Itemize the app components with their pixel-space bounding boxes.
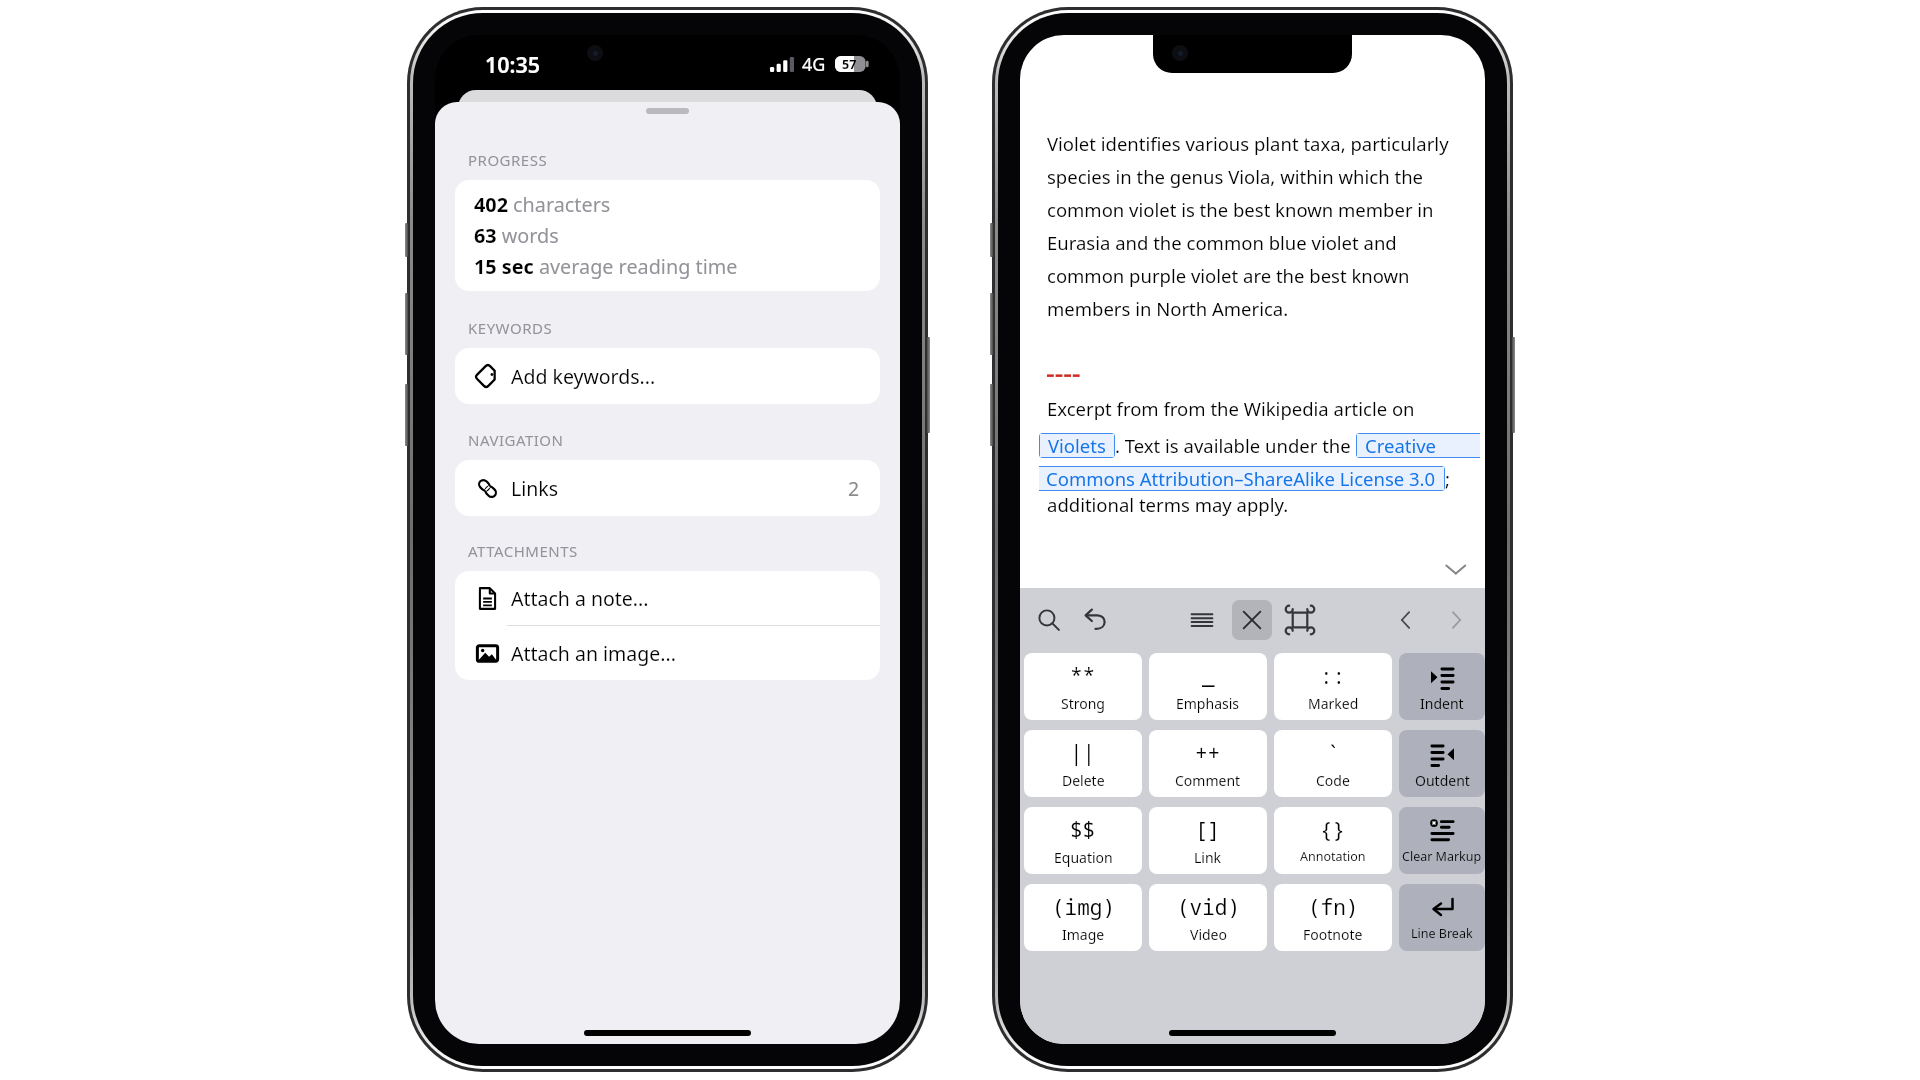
button[interactable]: Menu	[1182, 600, 1222, 640]
staticText: Image	[1062, 925, 1105, 944]
button[interactable]: Attach an image...	[455, 626, 880, 680]
button[interactable]: Links	[455, 460, 880, 516]
staticText: (img)	[1052, 893, 1115, 922]
staticText: Video	[1190, 925, 1227, 944]
button[interactable]: Indent	[1399, 653, 1485, 720]
staticText: Marked	[1308, 694, 1359, 713]
staticText: Equation	[1054, 848, 1113, 867]
staticText: _	[1202, 662, 1215, 691]
staticText: Attach an image...	[511, 640, 676, 667]
button[interactable]: ++	[1149, 730, 1267, 797]
staticText: ::	[1320, 662, 1346, 691]
staticText: $$	[1070, 816, 1096, 845]
button[interactable]: _	[1149, 653, 1267, 720]
button[interactable]: Next	[1436, 600, 1476, 640]
button[interactable]: **	[1024, 653, 1142, 720]
button[interactable]: Creative	[1356, 433, 1480, 458]
staticText: 2	[848, 475, 860, 502]
button[interactable]: Clear Markup	[1399, 807, 1485, 874]
staticText: PROGRESS	[468, 150, 548, 170]
staticText: Annotation	[1300, 848, 1366, 865]
staticText: (fn)	[1308, 893, 1359, 922]
button[interactable]: Previous	[1386, 600, 1426, 640]
staticText: Links	[511, 475, 559, 502]
staticText: Commons Attribution–ShareAlike License 3…	[1046, 466, 1436, 491]
button[interactable]: Search	[1029, 600, 1069, 640]
staticText: Violets	[1048, 433, 1106, 458]
button[interactable]: $$	[1024, 807, 1142, 874]
staticText: `	[1327, 739, 1340, 768]
staticText: Add keywords...	[511, 363, 656, 390]
staticText: ;	[1445, 466, 1450, 491]
staticText: **	[1070, 662, 1096, 691]
button[interactable]: Line Break	[1399, 884, 1485, 951]
staticText: Code	[1316, 771, 1350, 790]
staticText: Link	[1194, 848, 1222, 867]
button[interactable]: Close	[1232, 600, 1272, 640]
staticText: Outdent	[1415, 771, 1470, 790]
staticText: Indent	[1420, 694, 1464, 713]
staticText: Clear Markup	[1402, 848, 1482, 865]
staticText: Delete	[1062, 771, 1105, 790]
other: Collapse	[1444, 564, 1468, 576]
staticText: 10:35	[485, 50, 541, 79]
button[interactable]: (fn)	[1274, 884, 1392, 951]
staticText: Footnote	[1303, 925, 1363, 944]
staticText: ATTACHMENTS	[468, 541, 578, 561]
button[interactable]: Outdent	[1399, 730, 1485, 797]
button[interactable]: Shortcuts	[1280, 600, 1320, 640]
staticText: Attach a note...	[511, 585, 649, 612]
button[interactable]: Violets	[1039, 433, 1115, 458]
staticText: additional terms may apply.	[1047, 492, 1289, 517]
button[interactable]: Commons Attribution–ShareAlike License 3…	[1039, 466, 1445, 491]
staticText: ++	[1195, 739, 1221, 768]
button[interactable]: (img)	[1024, 884, 1142, 951]
staticText: 4G	[802, 52, 826, 77]
button[interactable]: (vid)	[1149, 884, 1267, 951]
staticText: 402 characters 63 words 15 sec average r…	[474, 191, 738, 280]
staticText: []	[1195, 816, 1221, 845]
staticText: Emphasis	[1176, 694, 1240, 713]
staticText: . Text is available under the	[1115, 433, 1356, 458]
button[interactable]: `	[1274, 730, 1392, 797]
staticText: (vid)	[1177, 893, 1240, 922]
staticText: Excerpt from from the Wikipedia article …	[1047, 396, 1415, 421]
staticText: Line Break	[1411, 925, 1473, 942]
button[interactable]: ||	[1024, 730, 1142, 797]
staticText: Creative	[1365, 433, 1437, 458]
staticText: NAVIGATION	[468, 430, 564, 450]
staticText: Strong	[1061, 694, 1105, 713]
button[interactable]: Attach a note...	[455, 571, 880, 625]
staticText: Violet identifies various plant taxa, pa…	[1047, 131, 1461, 321]
button[interactable]: {}	[1274, 807, 1392, 874]
button[interactable]: ::	[1274, 653, 1392, 720]
staticText: 57	[842, 56, 857, 72]
button[interactable]: Undo	[1076, 600, 1116, 640]
button[interactable]: []	[1149, 807, 1267, 874]
button[interactable]: Add keywords...	[455, 348, 880, 404]
staticText: KEYWORDS	[468, 318, 553, 338]
staticText: Comment	[1175, 771, 1241, 790]
staticText: ||	[1070, 739, 1096, 768]
staticText: {}	[1320, 816, 1346, 845]
